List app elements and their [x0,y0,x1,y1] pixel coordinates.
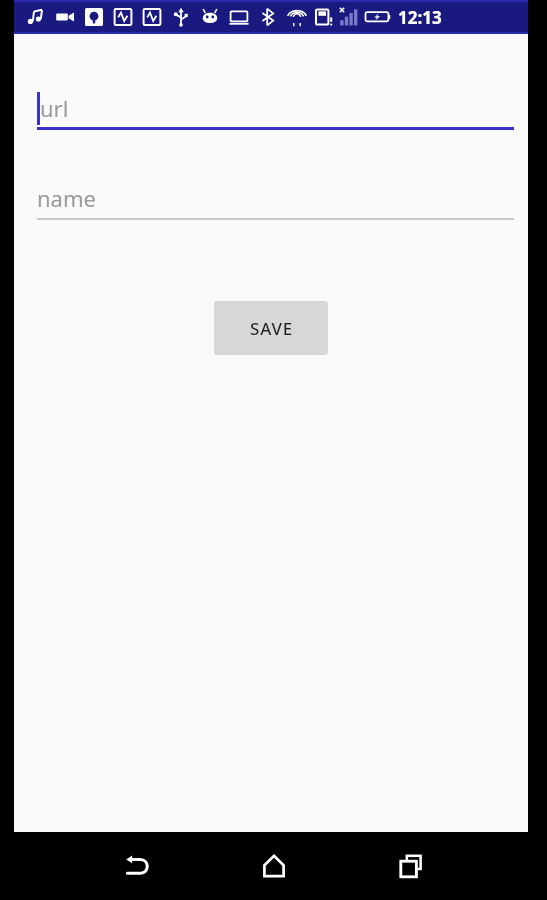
button[interactable]: Recent apps [385,840,437,892]
button[interactable]: url [37,86,514,130]
staticText: 12:13 [398,6,442,29]
button[interactable]: Back [111,840,163,892]
staticText: name [37,183,96,213]
button[interactable]: Home [248,840,300,892]
staticText: SAVE [250,317,293,340]
button[interactable]: SAVE [214,301,328,355]
staticText: url [40,93,69,123]
button[interactable]: name [37,176,514,220]
